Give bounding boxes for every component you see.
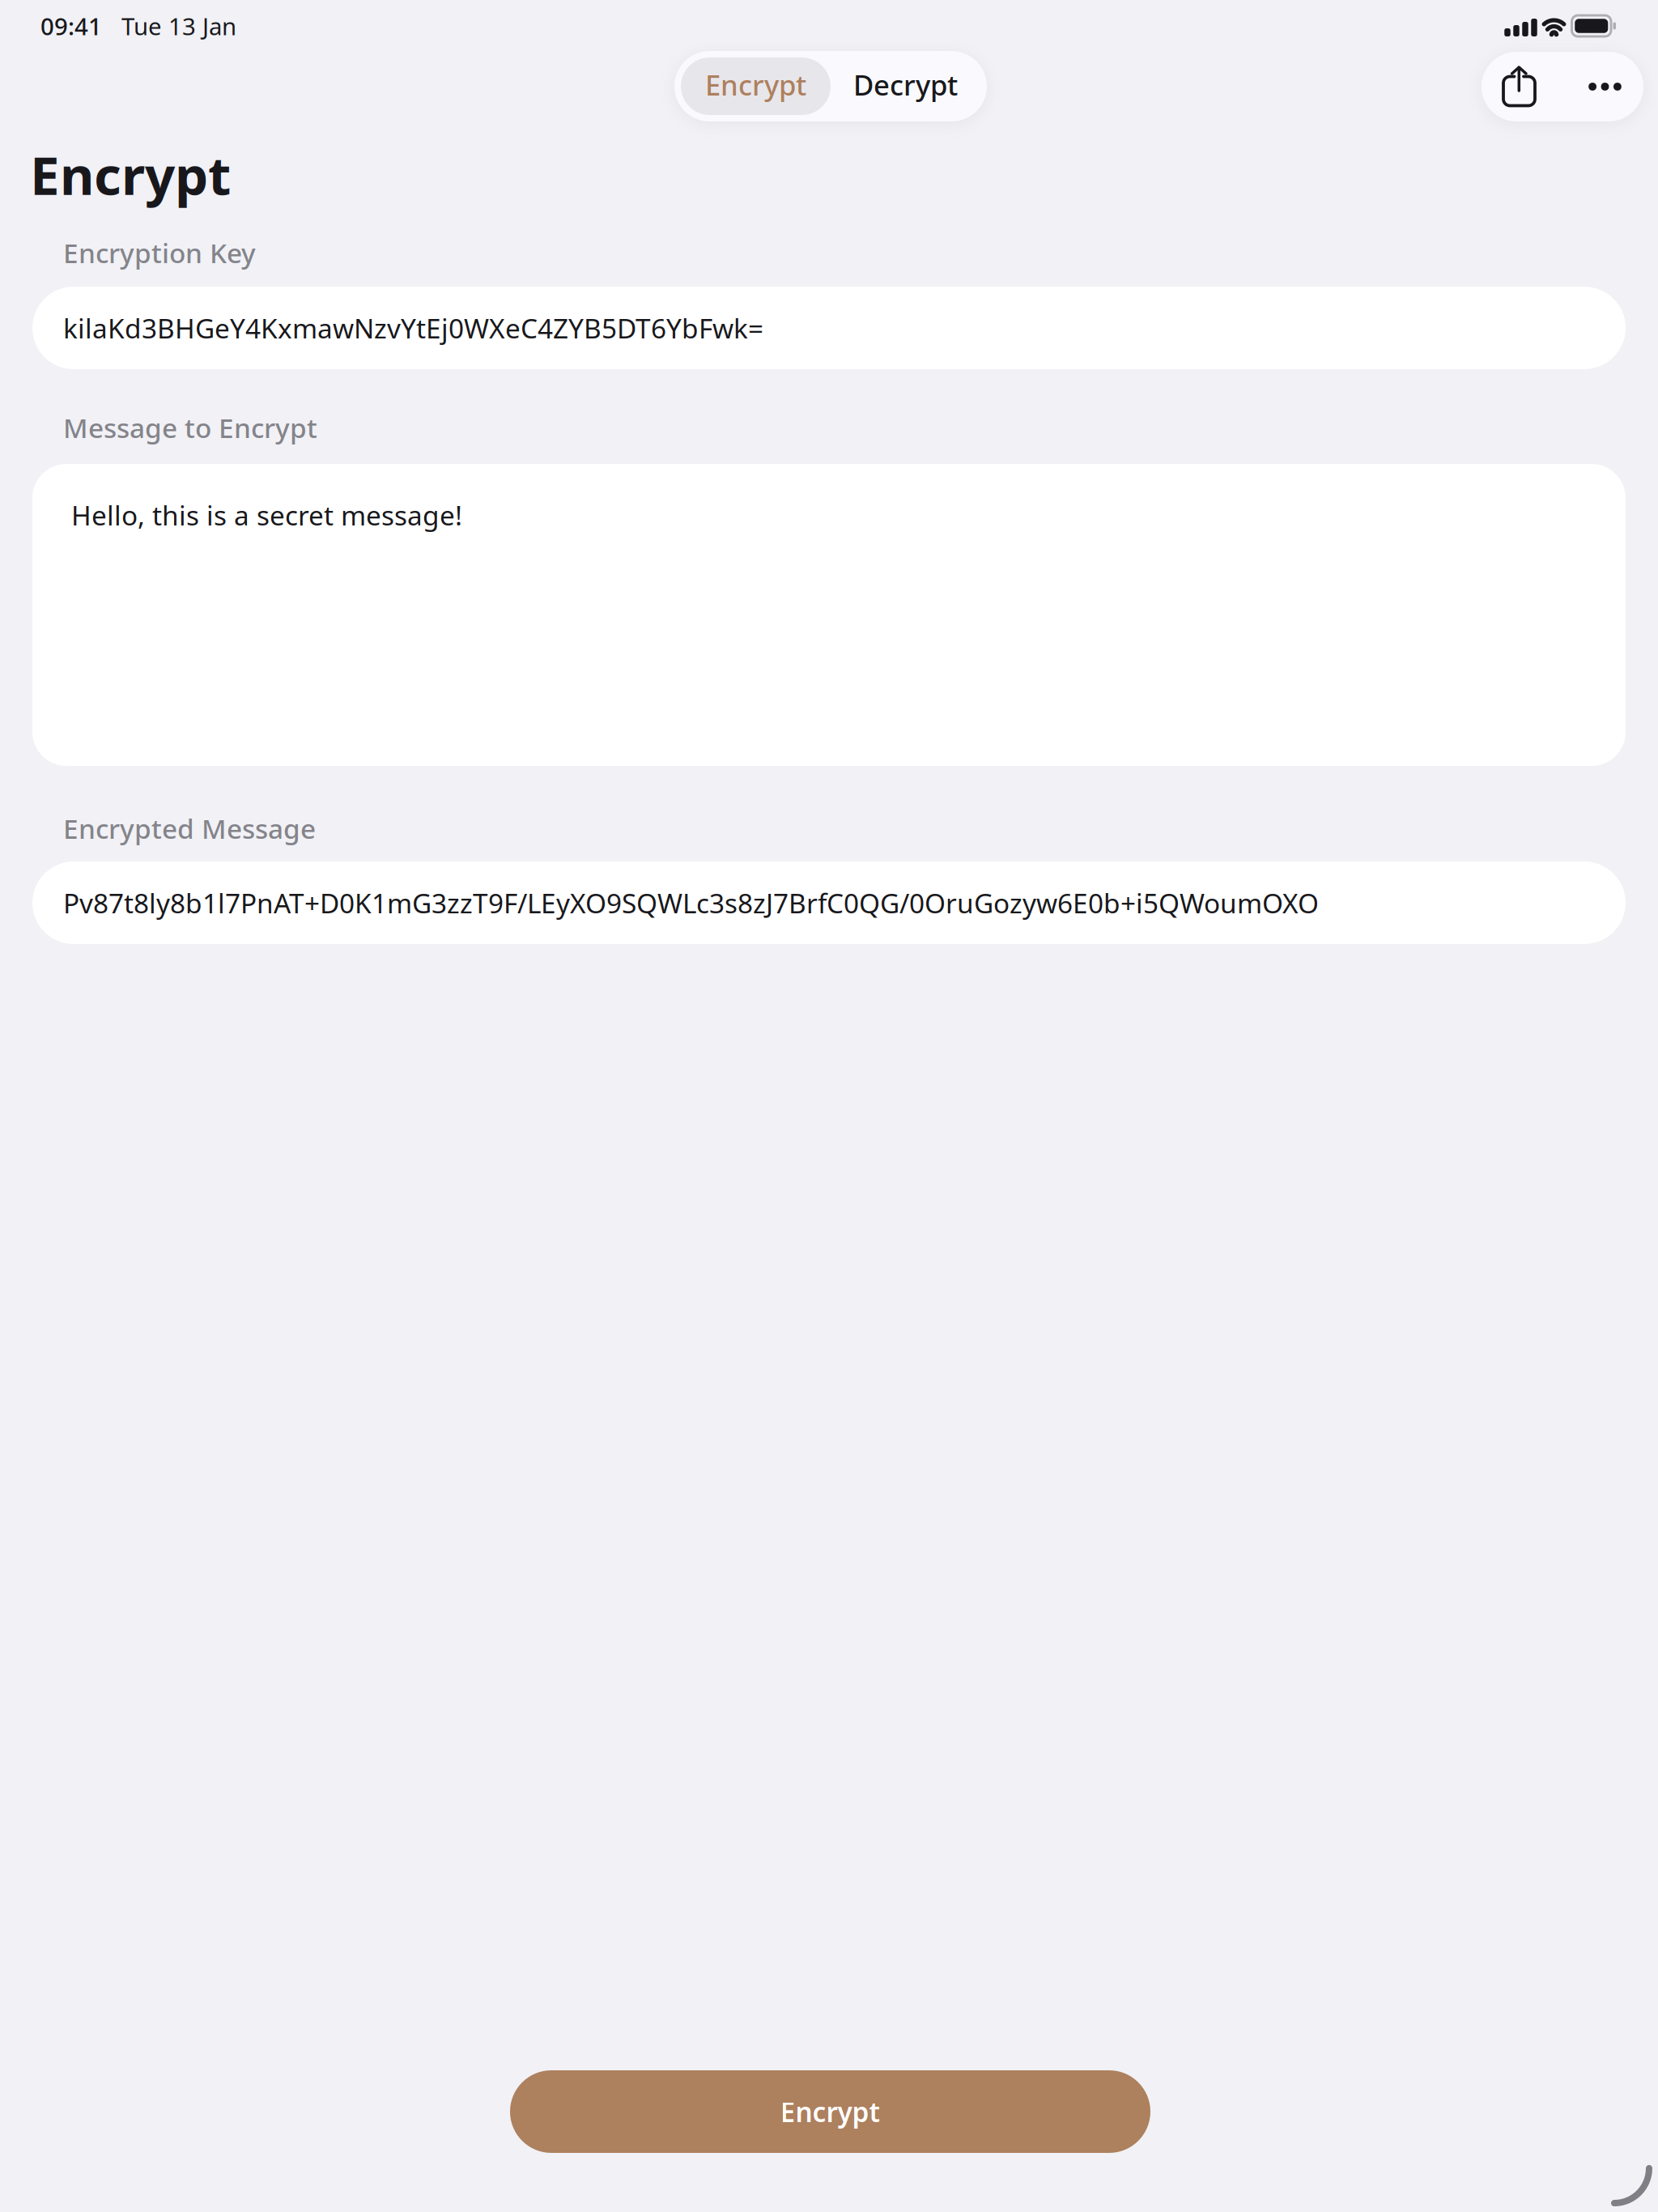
staticText: Encrypt <box>705 66 806 103</box>
staticText: kilaKd3BHGeY4KxmawNzvYtEj0WXeC4ZYB5DT6Yb… <box>63 310 763 346</box>
button[interactable]: Decrypt <box>831 57 980 115</box>
button[interactable]: Encrypt <box>510 2070 1150 2153</box>
staticText: 09:41 <box>40 10 102 42</box>
button[interactable]: Message to Encrypt <box>32 464 1626 766</box>
staticText: Decrypt <box>853 66 958 103</box>
staticText: Message to Encrypt <box>63 410 317 446</box>
button[interactable]: Encrypted Message <box>32 861 1626 944</box>
button[interactable]: Encrypt <box>681 57 831 115</box>
staticText: Encrypt <box>780 2094 880 2130</box>
staticText: Encryption Key <box>63 235 256 271</box>
button[interactable]: More options <box>1562 52 1648 121</box>
button[interactable]: Encryption Key <box>32 287 1626 369</box>
staticText: Encrypted Message <box>63 810 316 846</box>
staticText: Hello, this is a secret message! <box>71 497 462 533</box>
staticText: Encrypt <box>30 139 231 210</box>
staticText: Pv87t8ly8b1l7PnAT+D0K1mG3zzT9F/LEyXO9SQW… <box>63 885 1319 921</box>
staticText: Tue 13 Jan <box>121 10 236 42</box>
button[interactable]: Share <box>1482 51 1557 121</box>
